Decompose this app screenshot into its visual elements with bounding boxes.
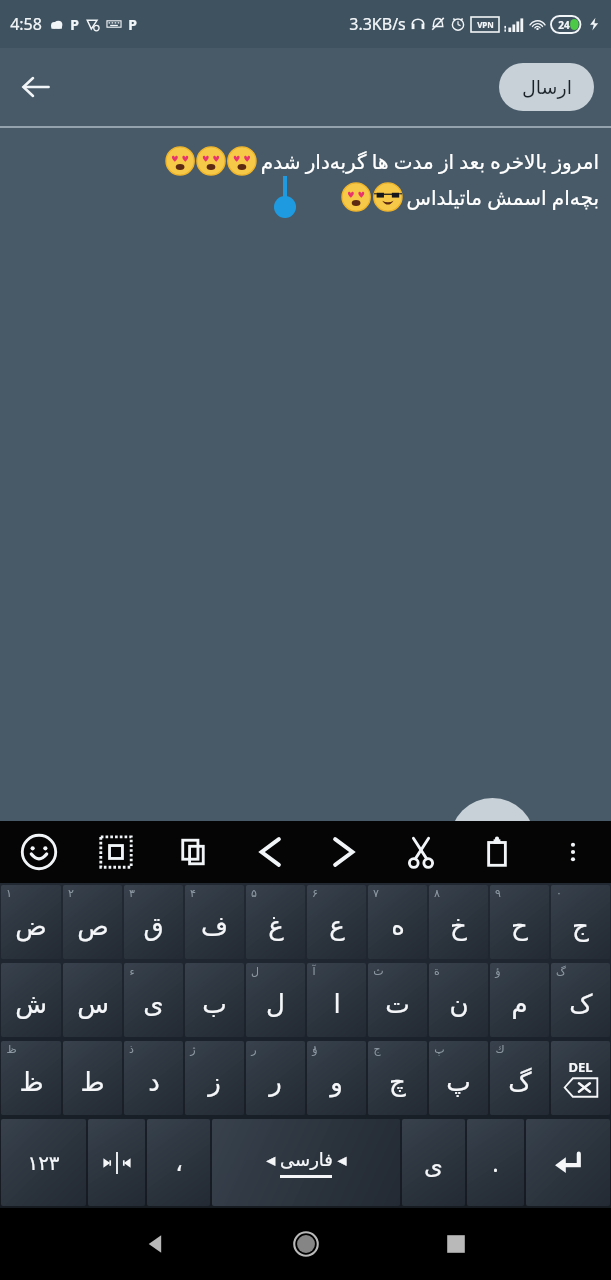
staticText: ۴	[190, 887, 196, 900]
staticText: ۹	[495, 887, 501, 900]
button[interactable]: س	[63, 963, 122, 1037]
button[interactable]: ۱	[1, 885, 61, 959]
staticText: ۷	[373, 887, 379, 900]
staticText: ب	[202, 989, 227, 1019]
button[interactable]: ۇ	[307, 1041, 366, 1115]
staticText: ف	[201, 911, 228, 941]
button[interactable]: ۸	[429, 885, 488, 959]
button[interactable]: Copy	[154, 821, 231, 883]
staticText: آ	[312, 965, 316, 978]
button[interactable]: ء	[124, 963, 183, 1037]
button[interactable]: ۶	[307, 885, 366, 959]
button[interactable]: ی	[402, 1119, 465, 1206]
button[interactable]: آ	[307, 963, 366, 1037]
staticText: خ	[450, 911, 467, 941]
button[interactable]: Move right	[307, 821, 383, 883]
staticText: ژ	[190, 1043, 196, 1056]
staticText: VPN	[477, 19, 494, 30]
button[interactable]: ر	[246, 1041, 305, 1115]
button[interactable]: Recent apps	[428, 1216, 484, 1272]
staticText: ۲	[68, 887, 74, 900]
button[interactable]: ۳	[124, 885, 183, 959]
button[interactable]: ۲	[63, 885, 122, 959]
button[interactable]: ج	[368, 1041, 427, 1115]
button[interactable]	[526, 1119, 610, 1206]
button[interactable]: ۴	[185, 885, 244, 959]
button[interactable]: ذ	[124, 1041, 183, 1115]
staticText: ۶	[312, 887, 318, 900]
button[interactable]: More options	[535, 821, 611, 883]
staticText: ز	[208, 1067, 221, 1097]
staticText: ه	[391, 911, 405, 941]
staticText: ؤ	[495, 965, 501, 978]
staticText: ا	[333, 989, 341, 1019]
staticText: گ	[556, 965, 566, 978]
button[interactable]: ◂ فارسی ◂	[212, 1119, 400, 1206]
button[interactable]: Select all	[77, 821, 154, 883]
staticText: ۱	[6, 887, 12, 900]
staticText: ◂ فارسی ◂	[266, 1147, 347, 1172]
staticText: ض	[15, 911, 47, 941]
staticText: ء	[129, 965, 135, 978]
staticText: گ	[508, 1067, 532, 1097]
staticText: ۰	[556, 887, 562, 900]
button[interactable]: ،	[147, 1119, 210, 1206]
button[interactable]: ژ	[185, 1041, 244, 1115]
button[interactable]: Back	[128, 1216, 184, 1272]
staticText: س	[77, 989, 109, 1019]
button[interactable]: ۰	[551, 885, 610, 959]
staticText: ل	[251, 965, 259, 978]
button[interactable]: ل	[246, 963, 305, 1037]
staticText: .	[492, 1146, 499, 1179]
staticText: ع	[329, 911, 345, 941]
button[interactable]: Move left	[231, 821, 307, 883]
staticText: 24	[558, 18, 570, 32]
button[interactable]: ث	[368, 963, 427, 1037]
button[interactable]: Back	[8, 59, 64, 115]
staticText: ذ	[129, 1043, 134, 1056]
button[interactable]: ۱۲۳	[1, 1119, 86, 1206]
staticText: ت	[385, 989, 410, 1019]
staticText: ة	[434, 965, 440, 978]
button[interactable]: Paste	[459, 821, 535, 883]
staticText: ص	[77, 911, 109, 941]
button[interactable]: Cut	[383, 821, 459, 883]
button[interactable]: ة	[429, 963, 488, 1037]
button[interactable]: ۹	[490, 885, 549, 959]
button[interactable]: .	[467, 1119, 524, 1206]
button[interactable]: ب	[185, 963, 244, 1037]
staticText: P	[128, 15, 137, 34]
button[interactable]: Home	[278, 1216, 334, 1272]
button[interactable]: DEL	[551, 1041, 610, 1115]
staticText: 3.3KB/s	[349, 13, 406, 35]
staticText: ک	[569, 989, 593, 1019]
staticText: ظ	[19, 1067, 44, 1097]
staticText: پ	[434, 1043, 445, 1056]
staticText: DEL	[568, 1058, 593, 1076]
staticText: ط	[80, 1067, 105, 1097]
staticText: ن	[449, 989, 469, 1019]
button[interactable]: ك	[490, 1041, 549, 1115]
button[interactable]: ؤ	[490, 963, 549, 1037]
staticText: ج	[373, 1043, 381, 1056]
staticText: پ	[446, 1067, 471, 1097]
staticText: P	[70, 15, 79, 34]
staticText: امروز بالاخره بعد از مدت ها گربه‌دار شدم	[260, 148, 599, 175]
staticText: ش	[15, 989, 47, 1019]
button[interactable]: گ	[551, 963, 610, 1037]
button[interactable]: ۷	[368, 885, 427, 959]
staticText: ث	[373, 965, 384, 978]
button[interactable]: ارسال	[499, 63, 594, 111]
button[interactable]: ط	[63, 1041, 122, 1115]
button[interactable]: ش	[1, 963, 61, 1037]
button[interactable]: Text formatting	[450, 798, 535, 883]
staticText: A	[478, 814, 507, 868]
button[interactable]	[88, 1119, 145, 1206]
staticText: ۳	[129, 887, 135, 900]
staticText: ی	[143, 989, 164, 1019]
staticText: غ	[268, 911, 284, 941]
button[interactable]: Emoji	[0, 821, 77, 883]
button[interactable]: ۵	[246, 885, 305, 959]
button[interactable]: پ	[429, 1041, 488, 1115]
button[interactable]: ظ	[1, 1041, 61, 1115]
